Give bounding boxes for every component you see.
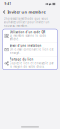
staticText: 9:41 bbox=[4, 2, 11, 6]
staticText: Envoi d'une invitation bbox=[9, 44, 41, 47]
button[interactable]: Utilisation d'un code QR bbox=[3, 29, 57, 42]
staticText: Le membre scanne le code affiché. bbox=[9, 34, 46, 41]
staticText: Choisissez la méthode que vous souhaitez… bbox=[4, 17, 50, 28]
staticText: Utilisation d'un code QR bbox=[9, 30, 45, 34]
staticText: Partage du lien bbox=[9, 58, 33, 61]
button[interactable]: Partage du lien bbox=[3, 56, 57, 70]
staticText: Copiez le lien et envoyez-le par le moye… bbox=[9, 61, 53, 68]
button[interactable]: Envoi d'une invitation bbox=[3, 43, 57, 56]
staticText: Inviter un membre bbox=[7, 9, 45, 15]
staticText: Un e-mail contenant le lien est envoyé. bbox=[9, 48, 53, 55]
button[interactable]: Retour bbox=[2, 9, 6, 15]
